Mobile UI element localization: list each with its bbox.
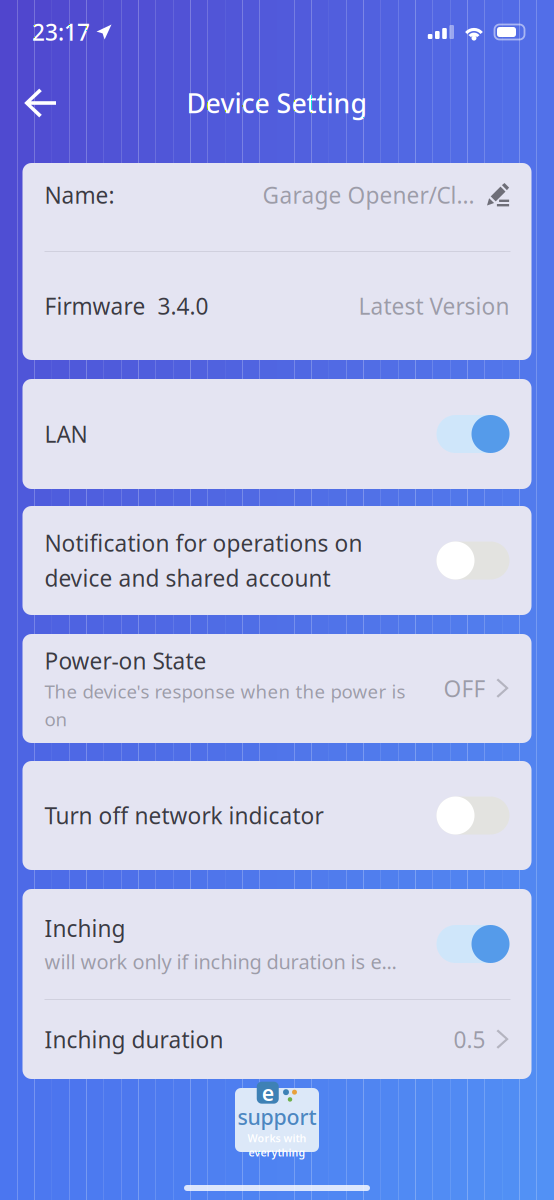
staticText: The device's response when the power is [44,679,405,704]
button[interactable]: Inching [436,925,509,963]
staticText: Power-on State [44,646,206,676]
button[interactable]: LAN [436,415,509,453]
staticText: will work only if inching duration is e.… [44,948,396,975]
staticText: Garage Opener/Cl... [262,180,474,210]
button[interactable]: Name: [22,163,531,227]
staticText: Inching [44,913,125,943]
staticText: 23:17 [32,17,90,47]
staticText: e [262,1078,274,1107]
staticText: Works with [247,1131,306,1145]
staticText: support [237,1103,316,1131]
button[interactable]: Power-on State [22,634,531,743]
button[interactable]: Inching duration [22,1000,531,1079]
staticText: LAN [44,419,87,449]
staticText: Device Setting [186,85,367,121]
staticText: OFF [443,673,485,703]
staticText: Latest Version [358,291,509,321]
staticText: Turn off network indicator [44,800,323,830]
staticText: everything [248,1145,305,1159]
button[interactable]: Back [0,76,75,130]
staticText: Inching duration [44,1024,223,1054]
button[interactable]: Turn off network indicator [436,796,509,834]
staticText: on [44,707,67,731]
button[interactable]: Notification for operations on device an… [436,541,509,579]
staticText: device and shared account [44,563,330,593]
staticText: Firmware 3.4.0 [44,291,208,321]
staticText: Name: [44,180,114,210]
staticText: 0.5 [453,1024,485,1054]
staticText: Notification for operations on [44,528,362,558]
